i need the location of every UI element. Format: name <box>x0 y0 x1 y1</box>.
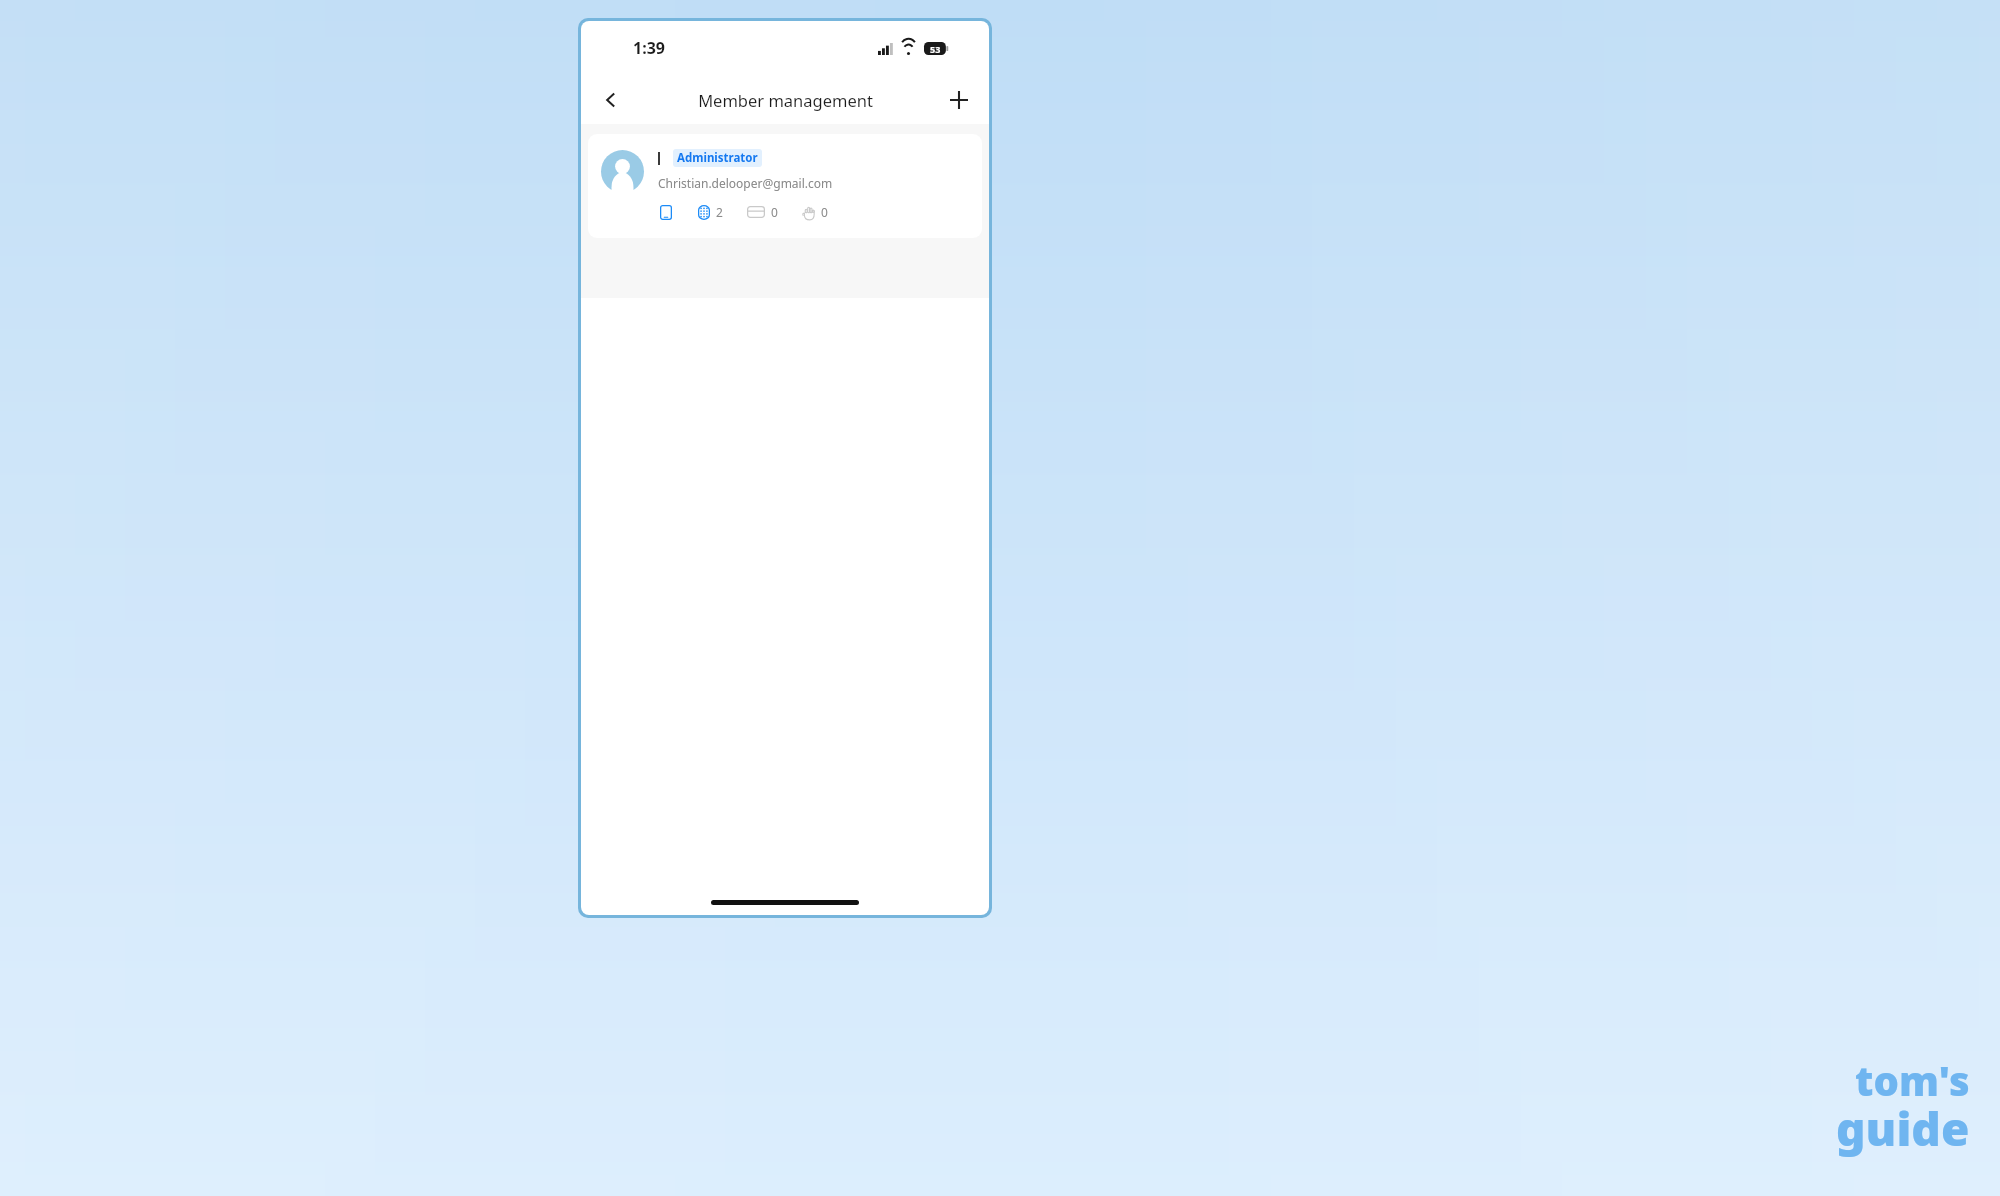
button[interactable]: 0 <box>745 202 780 222</box>
staticText: guide <box>1836 1097 1970 1160</box>
staticText: 1:39 <box>633 37 665 59</box>
staticText: Member management <box>698 89 873 111</box>
staticText: tom's <box>1855 1053 1970 1107</box>
staticText: Christian.delooper@gmail.com <box>658 175 833 191</box>
button[interactable]: Add member <box>937 78 981 122</box>
staticText: 53 <box>930 43 941 55</box>
button[interactable]: Back <box>589 78 633 122</box>
button[interactable]: Administrator <box>588 134 982 238</box>
button[interactable]: 0 <box>800 202 830 222</box>
staticText: 0 <box>821 204 828 220</box>
staticText: 0 <box>771 204 778 220</box>
staticText: Administrator <box>677 150 758 166</box>
button[interactable]: Phones <box>658 203 674 222</box>
button[interactable]: 2 <box>696 202 725 222</box>
staticText: 2 <box>716 204 723 220</box>
